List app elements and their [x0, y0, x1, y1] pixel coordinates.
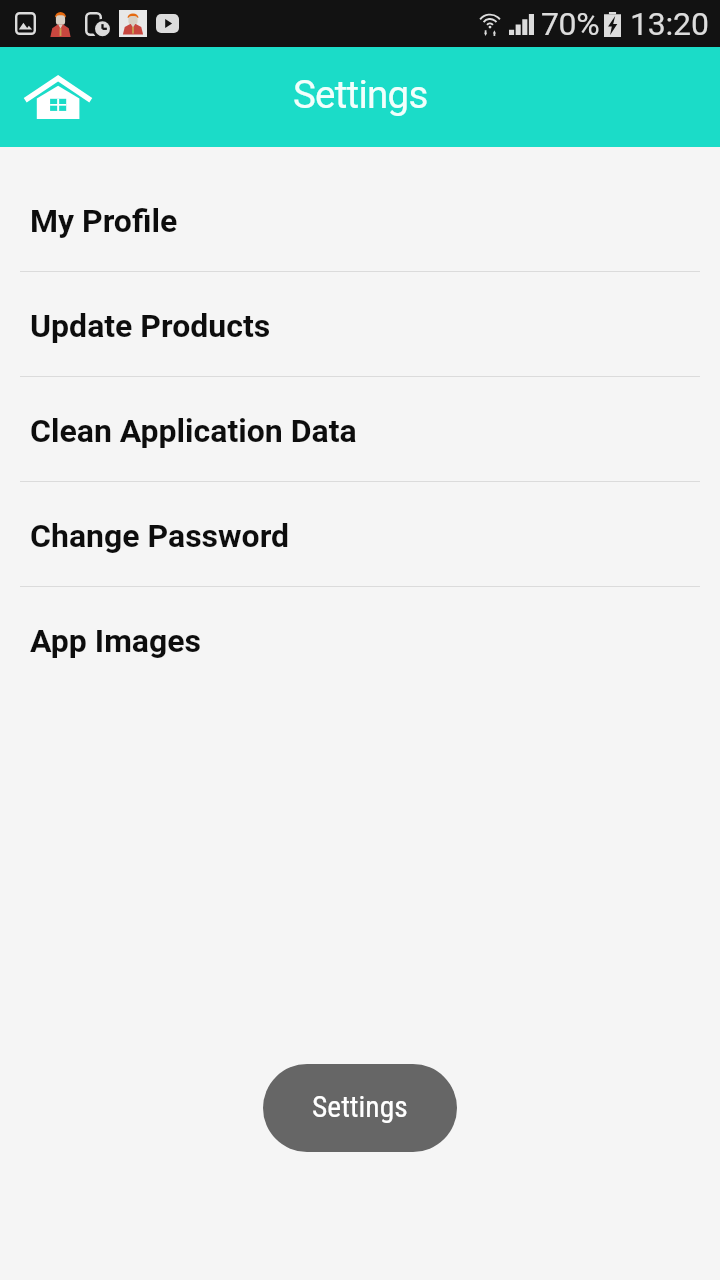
staticText: My Profile [30, 202, 178, 240]
staticText: Change Password [30, 517, 290, 555]
staticText: 13:20 [630, 5, 709, 43]
button[interactable]: My Profile [0, 167, 720, 271]
staticText: Settings [312, 1090, 408, 1125]
staticText: App Images [30, 622, 202, 660]
button[interactable]: Home [12, 63, 104, 131]
button[interactable]: Settings [263, 1064, 457, 1152]
staticText: Clean Application Data [30, 412, 357, 450]
button[interactable]: Update Products [0, 272, 720, 376]
button[interactable]: Change Password [0, 482, 720, 586]
button[interactable]: Clean Application Data [0, 377, 720, 481]
staticText: 70% [541, 5, 600, 43]
staticText: Update Products [30, 307, 271, 345]
button[interactable]: App Images [0, 587, 720, 691]
staticText: Settings [293, 72, 428, 117]
